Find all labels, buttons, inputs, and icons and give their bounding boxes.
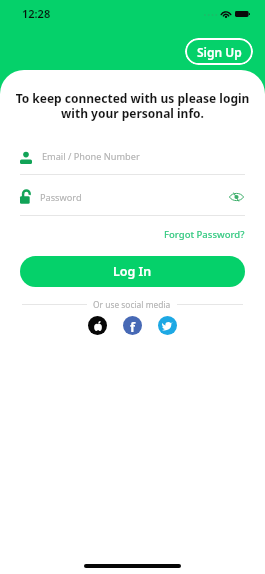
staticText: To keep connected with us please login w… [8,90,257,121]
staticText: Email / Phone Number [42,150,140,163]
button[interactable]: Sign in with Apple [88,316,107,335]
button[interactable]: Sign in with Twitter [158,316,177,335]
button[interactable]: Forgot Password? [144,225,265,244]
button[interactable]: Show password [227,190,245,204]
staticText: Password [40,191,82,204]
staticText: f [130,318,136,335]
button[interactable]: Sign in with Facebook [123,316,142,335]
button[interactable]: Log In [20,256,245,287]
staticText: Or use social media [93,299,171,310]
staticText: 12:28 [22,6,51,21]
button[interactable]: Sign Up [185,38,253,65]
staticText: Sign Up [197,44,242,60]
staticText: Forgot Password? [164,228,245,241]
staticText: Log In [113,263,152,280]
